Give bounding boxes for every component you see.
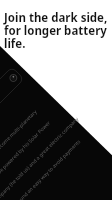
staticText: Join the dark side, for longer battery l…	[4, 10, 108, 51]
